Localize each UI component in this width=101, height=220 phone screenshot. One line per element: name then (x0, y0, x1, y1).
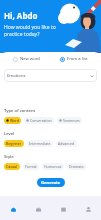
button[interactable]: Advanced (56, 140, 77, 147)
button[interactable]: Dramatic (67, 163, 86, 170)
staticText: Beginner (6, 141, 22, 146)
staticText: Generate (41, 180, 61, 186)
staticText: Hi, Abdo (4, 10, 38, 21)
button[interactable]: Sentences (57, 117, 82, 124)
button[interactable]: Conversation (24, 117, 54, 124)
button[interactable]: New word (3, 56, 50, 62)
button[interactable]: Home (0, 196, 26, 220)
button[interactable]: Emotions (4, 69, 97, 82)
staticText: New word (20, 56, 40, 62)
button[interactable]: Profile (76, 196, 101, 220)
staticText: Formal (25, 164, 37, 169)
button[interactable]: Generate (37, 178, 65, 187)
staticText: Casual (6, 164, 18, 169)
staticText: Type of content (4, 108, 36, 114)
staticText: Conversation (30, 118, 52, 123)
staticText: Emotions (7, 73, 26, 79)
staticText: Humorous (44, 164, 62, 169)
button[interactable]: Beginner (4, 140, 24, 147)
button[interactable]: Briefcase (26, 196, 51, 220)
button[interactable]: Library (51, 196, 76, 220)
staticText: Word (10, 118, 19, 123)
staticText: Style (4, 154, 14, 160)
button[interactable]: From a list (50, 56, 98, 62)
button[interactable]: Humorous (42, 163, 64, 170)
staticText: Advanced (58, 141, 75, 146)
staticText: From a list (67, 56, 88, 62)
staticText: Intermediate (29, 141, 51, 146)
staticText: Sentences (63, 118, 80, 123)
staticText: How would you like to practice today? (4, 24, 56, 38)
button[interactable]: Intermediate (27, 140, 53, 147)
staticText: Dramatic (69, 164, 84, 169)
staticText: Level (4, 131, 15, 137)
button[interactable]: Formal (23, 163, 39, 170)
button[interactable]: Word (4, 117, 21, 124)
button[interactable]: Casual (4, 163, 20, 170)
